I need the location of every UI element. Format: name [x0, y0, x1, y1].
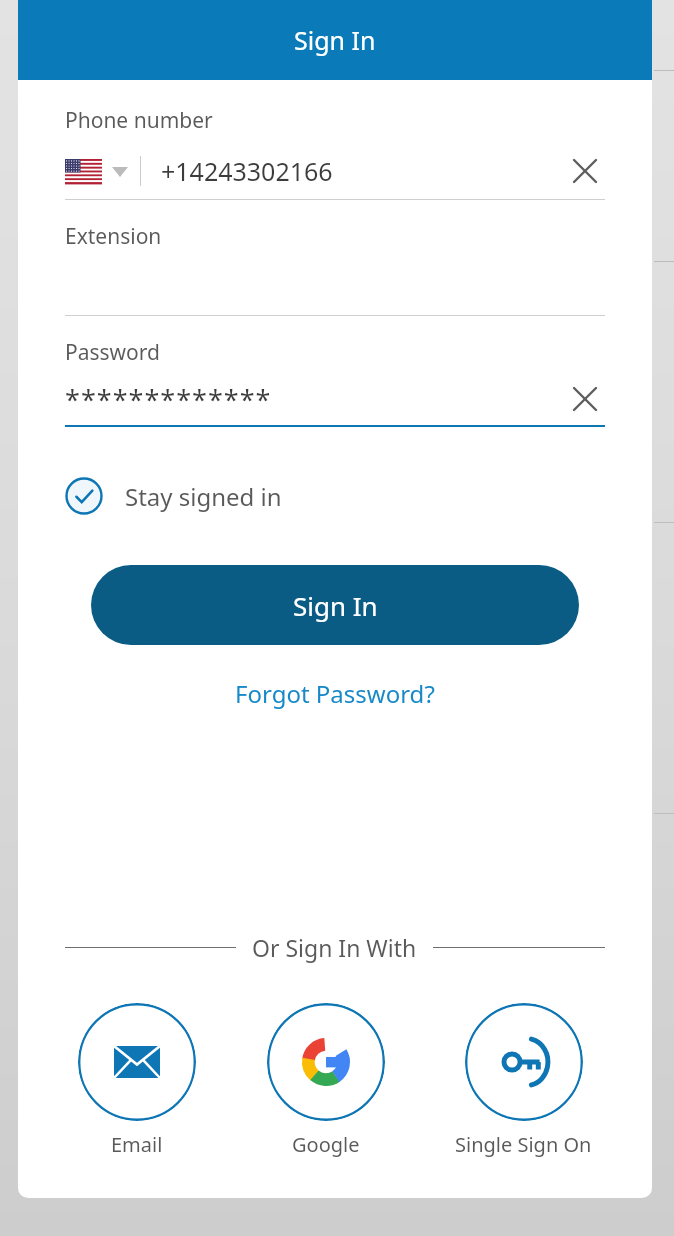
staticText: Google [292, 1131, 360, 1158]
staticText: Password [65, 338, 160, 367]
button[interactable]: Clear [565, 151, 605, 191]
staticText: Sign In [293, 588, 378, 623]
staticText: Forgot Password? [235, 677, 435, 710]
button[interactable]: Sign In [91, 565, 579, 645]
staticText: Single Sign On [455, 1131, 592, 1158]
button[interactable]: Stay signed in [65, 477, 282, 515]
button[interactable]: Single Sign On [465, 1003, 583, 1121]
staticText: +14243302166 [161, 154, 565, 188]
staticText: Phone number [65, 106, 213, 135]
staticText: Stay signed in [125, 480, 282, 513]
staticText: Email [111, 1131, 163, 1158]
button[interactable]: Sign in with Google [267, 1003, 385, 1121]
staticText: ************* [65, 381, 565, 418]
staticText: Or Sign In With [252, 932, 417, 963]
button[interactable]: Forgot Password? [225, 671, 445, 716]
button[interactable]: Sign in with Email [78, 1003, 196, 1121]
staticText: Extension [65, 222, 162, 251]
button[interactable]: Select country [65, 159, 128, 184]
staticText: Sign In [294, 23, 376, 57]
button[interactable]: Clear [565, 379, 605, 419]
